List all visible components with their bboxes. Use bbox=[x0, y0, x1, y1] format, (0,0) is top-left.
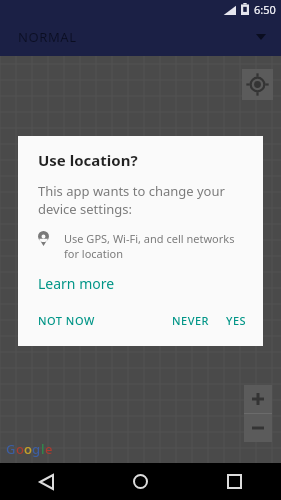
staticText: g bbox=[32, 440, 41, 458]
staticText: l bbox=[41, 440, 45, 458]
button[interactable]: Map type bbox=[249, 25, 273, 49]
staticText: NOT NOW bbox=[38, 313, 95, 328]
button[interactable]: Learn more bbox=[38, 274, 115, 293]
staticText: This app wants to change your device set… bbox=[38, 182, 225, 218]
button[interactable]: Zoom in bbox=[244, 385, 272, 413]
staticText: Use GPS, Wi-Fi, and cell networks for lo… bbox=[64, 231, 235, 261]
staticText: G bbox=[6, 440, 16, 458]
button[interactable]: Recents bbox=[187, 463, 281, 500]
button[interactable]: NEVER bbox=[172, 309, 210, 332]
button[interactable]: Back bbox=[0, 463, 93, 500]
staticText: NORMAL bbox=[18, 28, 77, 46]
staticText: o bbox=[24, 440, 32, 458]
staticText: Use location? bbox=[38, 150, 138, 170]
staticText: e bbox=[45, 440, 53, 458]
staticText: YES bbox=[226, 313, 247, 328]
staticText: o bbox=[16, 440, 24, 458]
button[interactable]: NOT NOW bbox=[38, 309, 95, 332]
staticText: NEVER bbox=[172, 313, 210, 328]
button[interactable]: Home bbox=[93, 463, 187, 500]
button[interactable]: My location bbox=[242, 69, 273, 100]
staticText: Learn more bbox=[38, 274, 115, 293]
staticText: 6:50 bbox=[254, 2, 276, 17]
button[interactable]: YES bbox=[226, 309, 247, 332]
button[interactable]: Zoom out bbox=[244, 414, 272, 442]
